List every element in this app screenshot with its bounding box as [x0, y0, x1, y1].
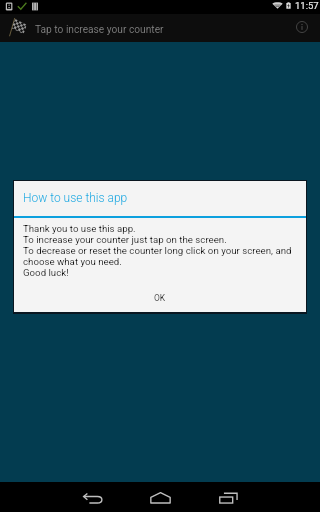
staticText: Thank you to use this app. To increase y…: [23, 223, 297, 278]
button[interactable]: Back: [73, 488, 113, 508]
staticText: Tap to increase your counter: [35, 24, 164, 36]
button[interactable]: Info: [289, 14, 315, 40]
staticText: OK: [154, 293, 166, 303]
button[interactable]: Recents: [208, 488, 248, 508]
button[interactable]: Home: [140, 488, 180, 508]
staticText: How to use this app: [23, 191, 128, 205]
staticText: 11:57: [295, 0, 319, 11]
button[interactable]: OK: [14, 293, 306, 312]
button[interactable]: App icon: [4, 14, 30, 40]
